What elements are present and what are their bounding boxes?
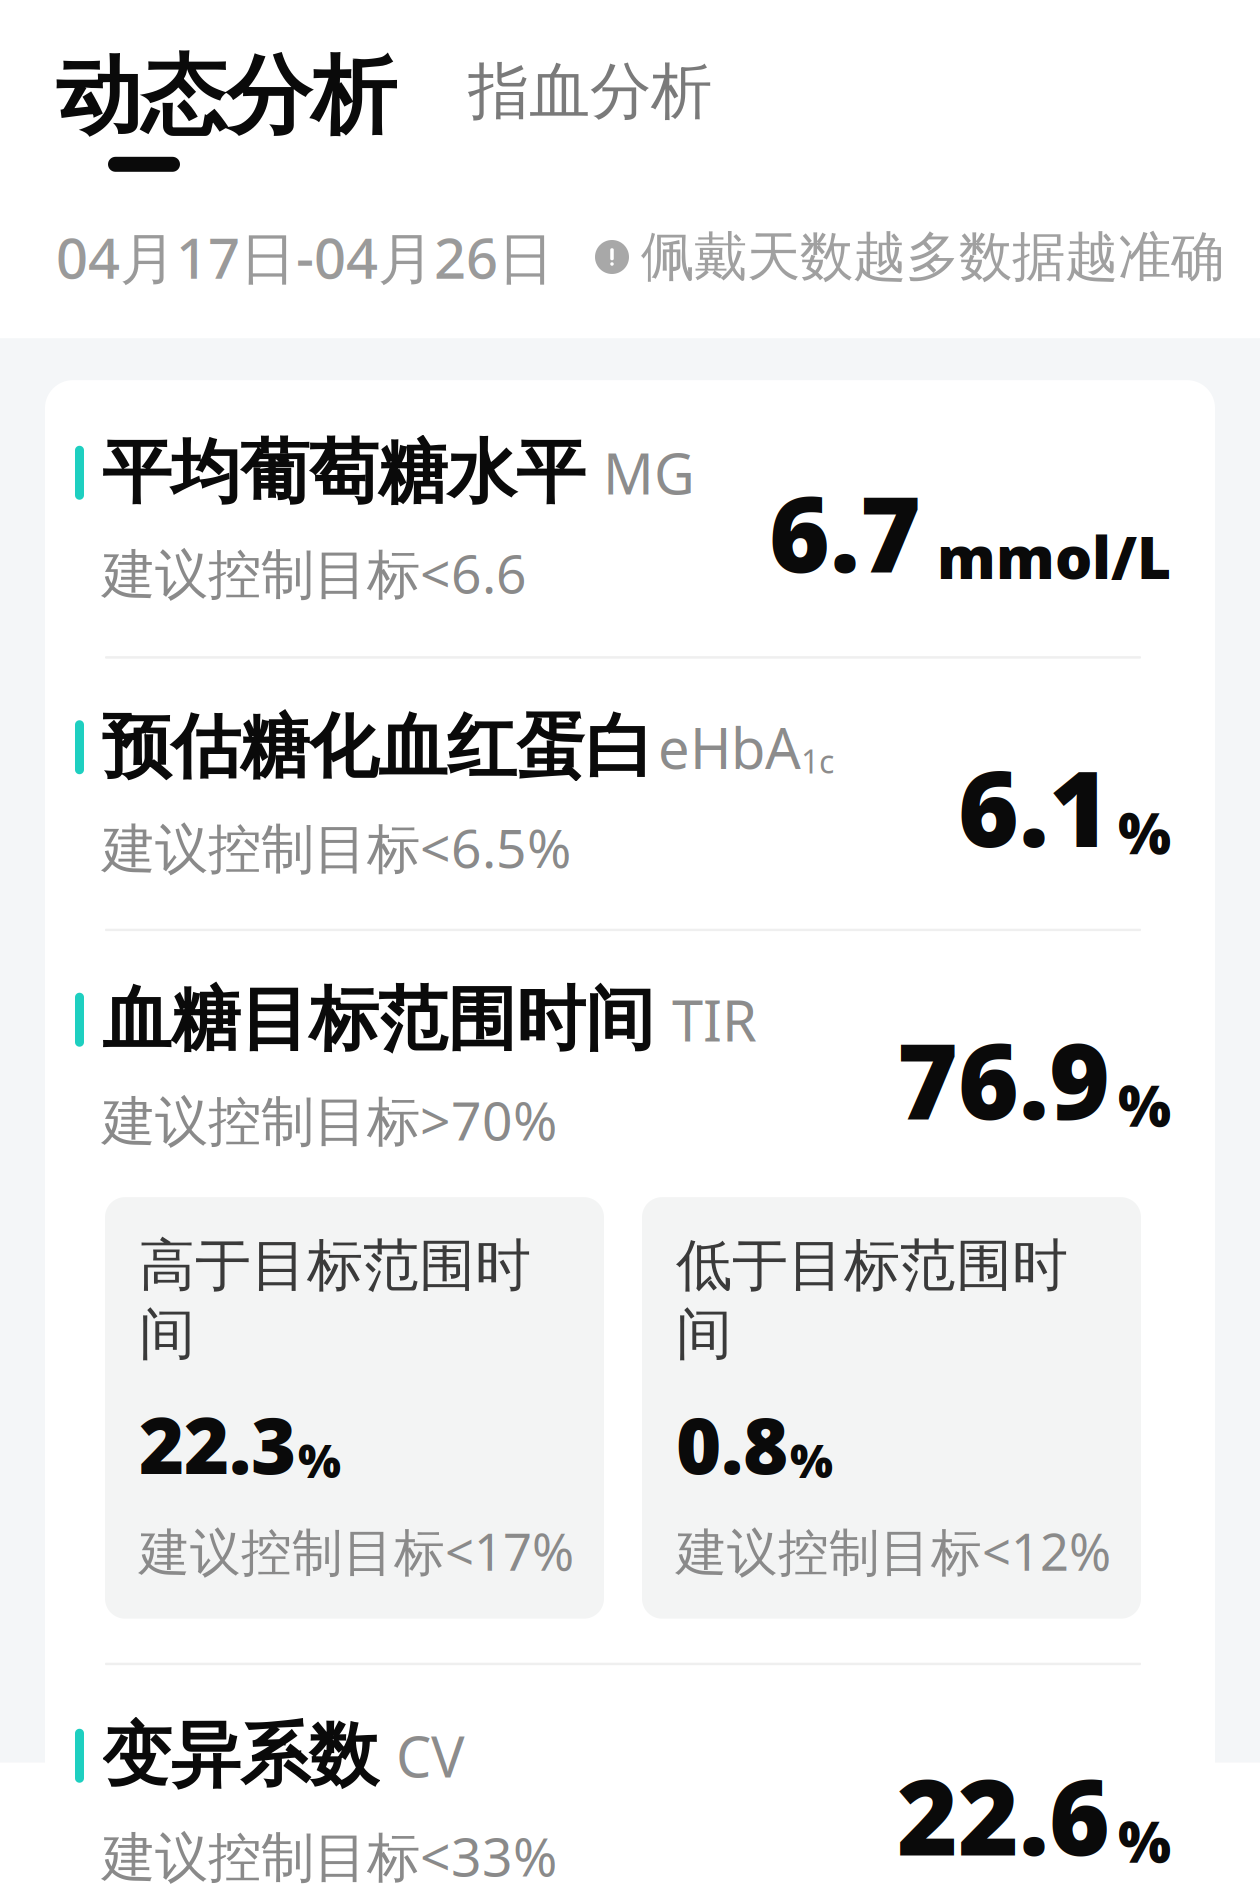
staticText: 1c bbox=[801, 740, 834, 782]
staticText: 22.3 bbox=[139, 1393, 296, 1495]
staticText: % bbox=[1118, 1068, 1171, 1142]
staticText: 建议控制目标<17% bbox=[139, 1517, 574, 1585]
staticText: mmol/L bbox=[937, 517, 1171, 595]
staticText: 指血分析 bbox=[468, 54, 712, 129]
staticText: eHbA bbox=[658, 710, 801, 784]
staticText: 变异系数 bbox=[102, 1713, 378, 1798]
staticText: 04月17日-04月26日 bbox=[56, 220, 554, 294]
staticText: 建议控制目标<6.6 bbox=[102, 537, 527, 608]
staticText: TIR bbox=[672, 982, 757, 1057]
staticText: 动态分析 bbox=[56, 44, 396, 149]
staticText: 预估糖化血红蛋白 bbox=[102, 705, 654, 790]
staticText: 0.8 bbox=[676, 1393, 788, 1495]
staticText: 高于目标范围时间 bbox=[139, 1231, 531, 1369]
staticText: 76.9 bbox=[897, 1010, 1110, 1148]
staticText: % bbox=[1118, 795, 1171, 870]
staticText: 6.1 bbox=[958, 738, 1110, 876]
staticText: 血糖目标范围时间 bbox=[102, 977, 654, 1062]
staticText: 建议控制目标>70% bbox=[102, 1084, 557, 1155]
staticText: 佩戴天数越多数据越准确 bbox=[641, 224, 1224, 290]
staticText: CV bbox=[396, 1719, 465, 1793]
staticText: 建议控制目标<12% bbox=[676, 1517, 1111, 1585]
staticText: MG bbox=[603, 436, 695, 510]
staticText: 6.7 bbox=[769, 463, 921, 601]
button[interactable]: 动态分析 bbox=[56, 44, 396, 172]
staticText: 22.6 bbox=[897, 1746, 1110, 1884]
staticText: 建议控制目标<33% bbox=[102, 1820, 557, 1891]
button[interactable]: 指血分析 bbox=[396, 44, 712, 129]
staticText: 低于目标范围时间 bbox=[676, 1231, 1068, 1369]
staticText: 平均葡萄糖水平 bbox=[102, 430, 585, 515]
staticText: % bbox=[298, 1430, 341, 1490]
staticText: 建议控制目标<6.5% bbox=[102, 812, 571, 883]
staticText: % bbox=[790, 1430, 833, 1490]
staticText: % bbox=[1118, 1804, 1171, 1878]
